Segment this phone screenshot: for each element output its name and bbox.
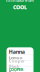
staticText: COOL xyxy=(13,4,27,11)
staticText: to choose from xyxy=(6,0,34,3)
staticText: Hanna xyxy=(9,48,25,55)
staticText: COOPER xyxy=(9,67,24,72)
button[interactable]: Lemon xyxy=(6,55,33,61)
button[interactable]: Hanna xyxy=(6,49,33,55)
staticText: Satin Script xyxy=(9,70,21,72)
staticText: Lemon xyxy=(9,55,23,60)
button[interactable]: COOPER xyxy=(6,67,33,72)
staticText: Cooper Black xyxy=(9,58,25,69)
button[interactable]: Cooper Black xyxy=(6,61,33,67)
